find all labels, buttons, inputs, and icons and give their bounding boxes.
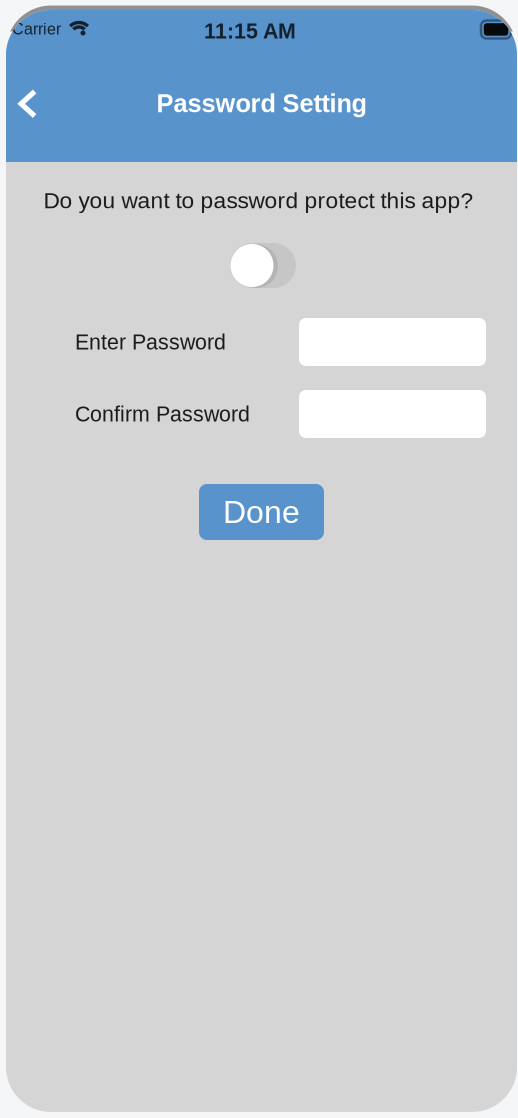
staticText: Password Setting	[156, 90, 366, 117]
staticText: Do you want to password protect this app…	[43, 188, 473, 213]
staticText: Confirm Password	[75, 402, 250, 426]
button[interactable]: Back	[7, 77, 49, 130]
staticText: Done	[223, 495, 300, 529]
button[interactable]: Password protect	[230, 243, 296, 288]
staticText: Enter Password	[75, 330, 226, 354]
button[interactable]: Done	[199, 484, 324, 540]
staticText: 11:15 AM	[204, 19, 296, 43]
staticText: Carrier	[12, 20, 61, 38]
